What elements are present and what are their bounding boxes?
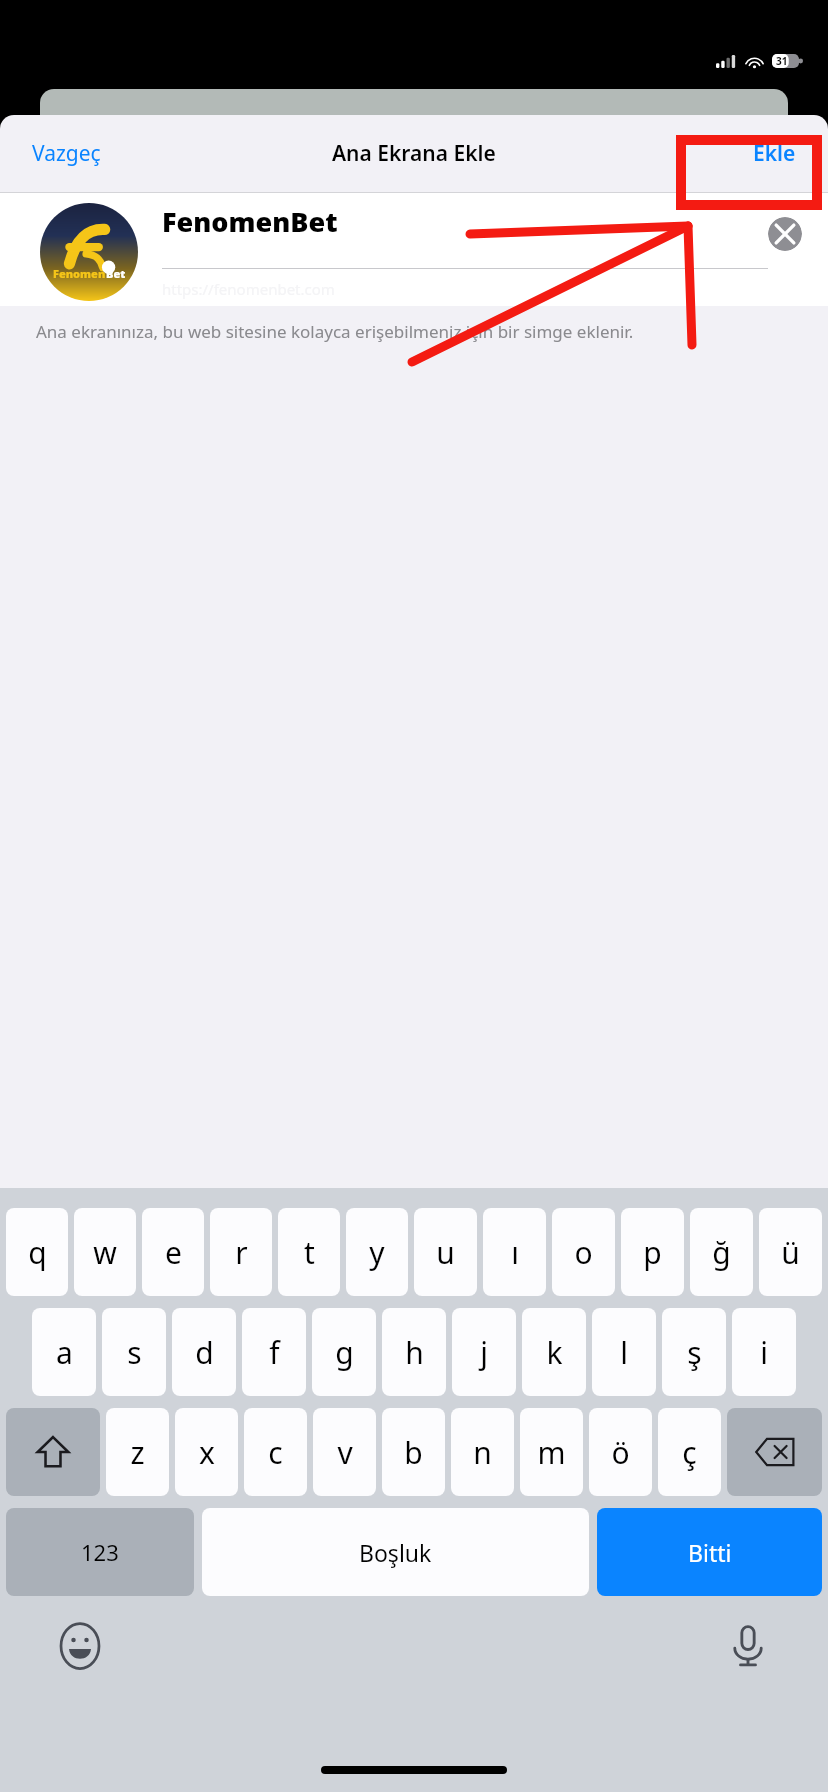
staticText: t [304, 1232, 315, 1273]
button[interactable]: g [312, 1308, 376, 1396]
staticText: s [127, 1332, 142, 1373]
button[interactable]: Boşluk [202, 1508, 589, 1596]
button[interactable]: n [451, 1408, 514, 1496]
button[interactable]: f [242, 1308, 306, 1396]
staticText: p [643, 1232, 662, 1273]
staticText: Ana Ekrana Ekle [332, 139, 496, 168]
staticText: u [436, 1232, 455, 1273]
button[interactable]: h [382, 1308, 446, 1396]
button[interactable]: v [313, 1408, 376, 1496]
staticText: Vazgeç [32, 139, 101, 168]
button[interactable]: t [278, 1208, 340, 1296]
staticText: l [620, 1332, 628, 1373]
staticText: a [56, 1332, 73, 1373]
button[interactable]: Emoji [52, 1618, 108, 1674]
staticText: g [335, 1332, 354, 1373]
staticText: h [405, 1332, 424, 1373]
staticText: https://fenomenbet.com [162, 279, 335, 299]
button[interactable]: s [102, 1308, 166, 1396]
button[interactable]: o [552, 1208, 615, 1296]
button[interactable]: Shift [6, 1408, 100, 1496]
button[interactable]: p [621, 1208, 684, 1296]
button[interactable]: y [346, 1208, 408, 1296]
staticText: w [93, 1232, 117, 1273]
button[interactable]: c [244, 1408, 307, 1496]
button[interactable]: m [520, 1408, 583, 1496]
staticText: q [28, 1232, 47, 1273]
button[interactable]: b [382, 1408, 445, 1496]
staticText: Boşluk [359, 1537, 432, 1568]
button[interactable]: Clear [768, 217, 802, 251]
staticText: Ana ekranınıza, bu web sitesine kolayca … [36, 320, 634, 343]
staticText: 123 [81, 1537, 119, 1567]
staticText: z [130, 1432, 145, 1473]
staticText: Fenomen [53, 266, 106, 281]
button[interactable]: Bitti [597, 1508, 822, 1596]
button[interactable]: ğ [690, 1208, 753, 1296]
staticText: i [760, 1332, 768, 1373]
staticText: Bet [106, 266, 126, 281]
staticText: FenomenBet [162, 203, 338, 240]
staticText: b [404, 1432, 423, 1473]
staticText: Ekle [753, 139, 796, 168]
button[interactable]: ö [589, 1408, 652, 1496]
button[interactable]: Ekle [739, 131, 810, 176]
button[interactable]: d [172, 1308, 236, 1396]
staticText: f [269, 1332, 280, 1373]
button[interactable]: u [414, 1208, 477, 1296]
button[interactable]: Backspace [727, 1408, 822, 1496]
staticText: ü [781, 1232, 800, 1273]
staticText: e [165, 1232, 182, 1273]
staticText: d [195, 1332, 214, 1373]
staticText: v [337, 1432, 353, 1473]
staticText: c [268, 1432, 283, 1473]
staticText: y [369, 1232, 385, 1273]
staticText: r [235, 1232, 248, 1273]
staticText: k [546, 1332, 563, 1373]
button[interactable]: Vazgeç [18, 131, 115, 176]
staticText: o [574, 1232, 593, 1273]
button[interactable]: a [32, 1308, 96, 1396]
button[interactable]: ü [759, 1208, 822, 1296]
staticText: Bitti [688, 1537, 732, 1568]
staticText: j [480, 1332, 488, 1373]
button[interactable]: ç [658, 1408, 721, 1496]
button[interactable]: x [175, 1408, 238, 1496]
button[interactable]: i [732, 1308, 796, 1396]
button[interactable]: l [592, 1308, 656, 1396]
button[interactable]: Dictation [720, 1618, 776, 1674]
button[interactable]: j [452, 1308, 516, 1396]
button[interactable]: w [74, 1208, 136, 1296]
button[interactable]: e [142, 1208, 204, 1296]
button[interactable]: q [6, 1208, 68, 1296]
button[interactable]: z [106, 1408, 169, 1496]
staticText: 31 [776, 54, 788, 68]
staticText: n [473, 1432, 492, 1473]
staticText: x [199, 1432, 215, 1473]
button[interactable]: ı [483, 1208, 546, 1296]
staticText: ı [511, 1232, 519, 1273]
button[interactable]: 123 [6, 1508, 194, 1596]
staticText: ş [687, 1332, 702, 1373]
button[interactable]: k [522, 1308, 586, 1396]
staticText: m [537, 1432, 566, 1473]
button[interactable]: ş [662, 1308, 726, 1396]
staticText: ö [611, 1432, 630, 1473]
staticText: ğ [712, 1232, 731, 1273]
staticText: ç [682, 1432, 697, 1473]
button[interactable]: r [210, 1208, 272, 1296]
